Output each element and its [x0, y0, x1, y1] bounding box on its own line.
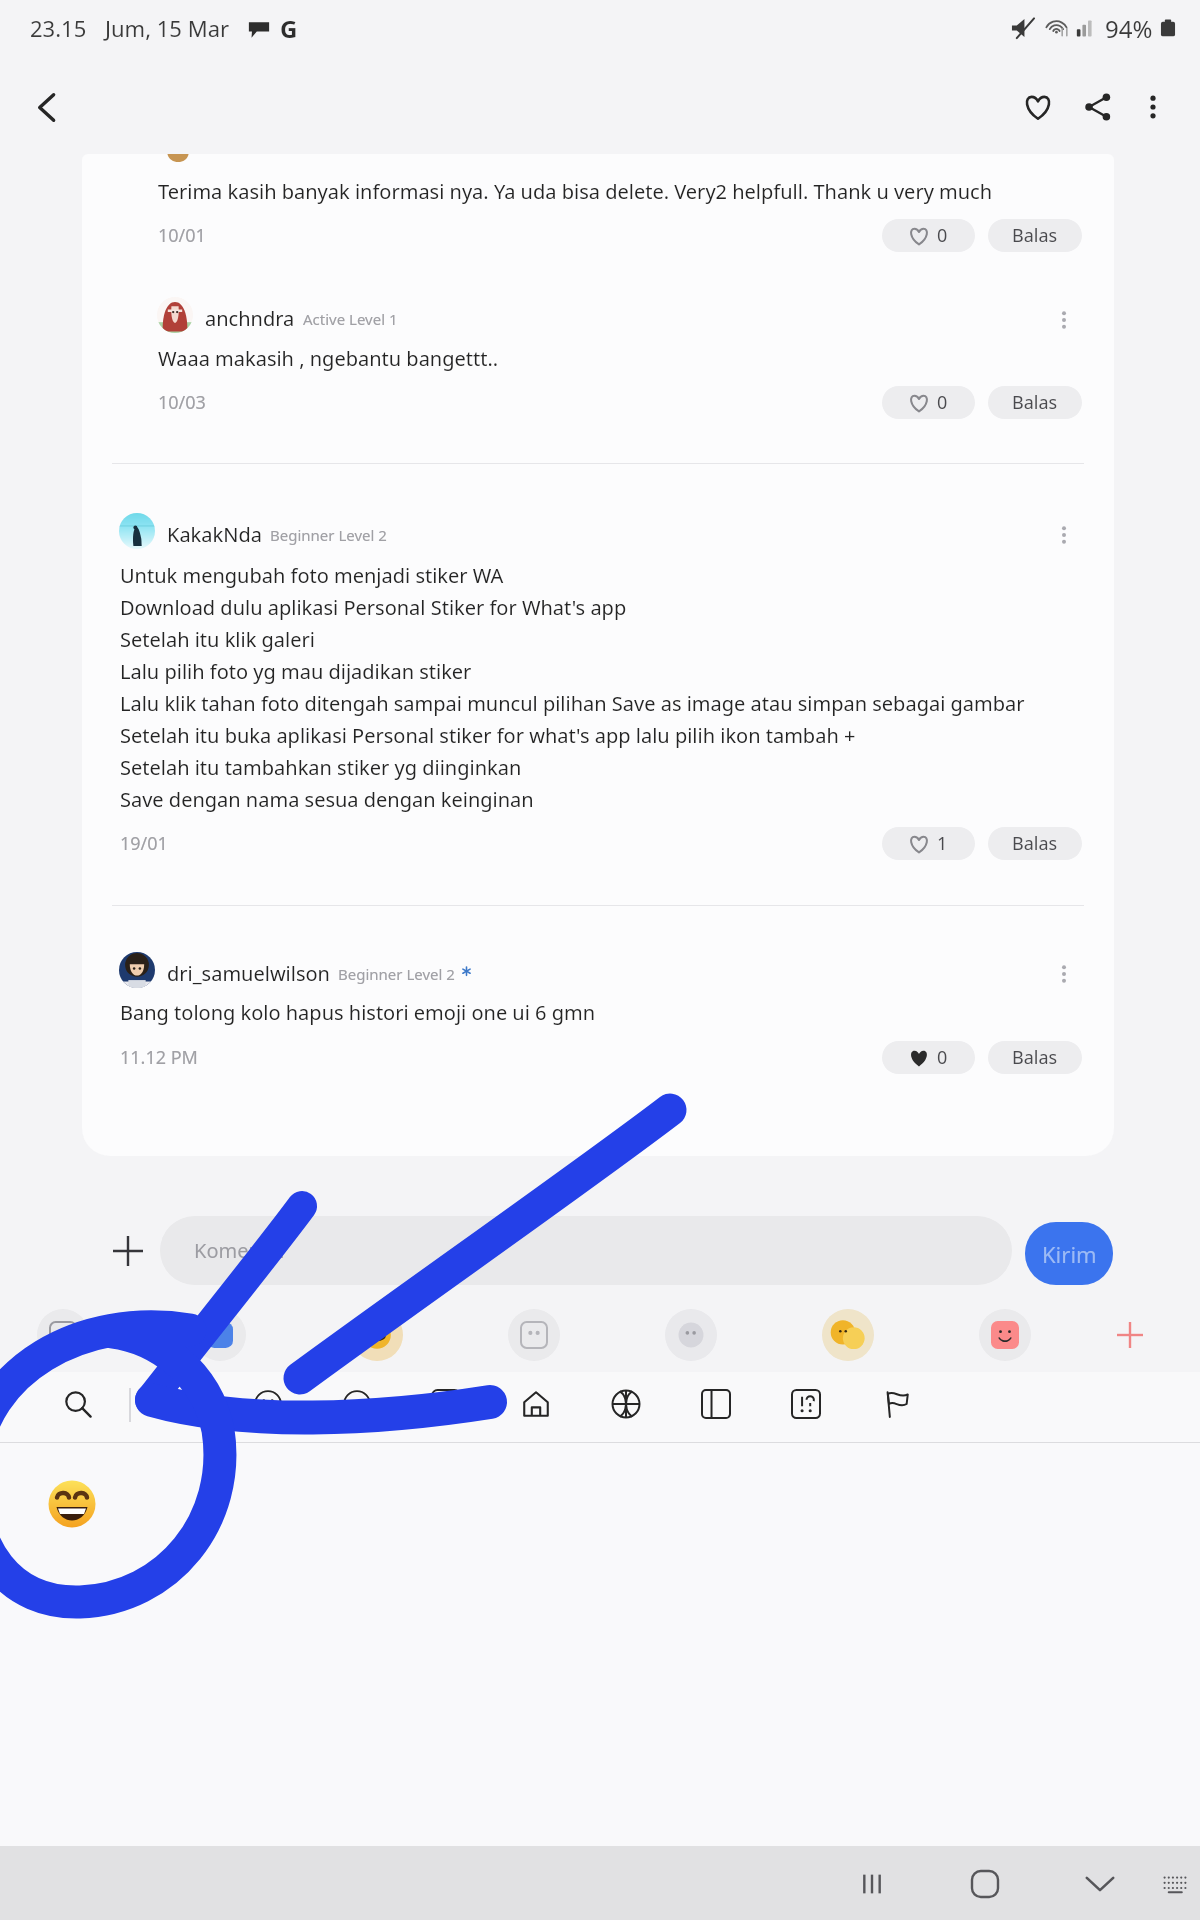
button[interactable]: Stickers	[332, 1379, 382, 1429]
button[interactable]: Balas	[988, 219, 1082, 252]
button[interactable]: Balas	[988, 827, 1082, 860]
button[interactable]: Shortcuts	[781, 1379, 831, 1429]
staticText: Balas	[1012, 223, 1058, 248]
staticText: Untuk mengubah foto menjadi stiker WA	[120, 562, 504, 589]
staticText: dri_samuelwilson	[167, 960, 330, 987]
staticText: 11.12 PM	[120, 1045, 198, 1070]
button[interactable]: Sticker	[822, 1309, 874, 1361]
button[interactable]: Sticker	[508, 1309, 560, 1361]
staticText: Lalu klik tahan foto ditengah sampai mun…	[120, 690, 1025, 717]
button[interactable]: Recents	[842, 1854, 902, 1914]
button[interactable]: Kirim	[1025, 1222, 1113, 1285]
staticText: Balas	[1012, 390, 1058, 415]
staticText: Save dengan nama sesua dengan keinginan	[120, 786, 534, 813]
button[interactable]: Flag	[871, 1379, 921, 1429]
button[interactable]: Comment options	[1044, 515, 1084, 555]
staticText: 0	[937, 390, 948, 415]
staticText: Beginner Level 2	[338, 964, 455, 984]
button[interactable]: Keyboard	[1145, 1854, 1200, 1914]
staticText: Balas	[1012, 831, 1058, 856]
staticText: 10/01	[158, 223, 206, 248]
staticText: anchndra	[205, 305, 295, 332]
staticText: 0	[937, 1045, 948, 1070]
staticText: Kirim	[1042, 1239, 1097, 1269]
staticText: Lalu pilih foto yg mau dijadikan stiker	[120, 658, 472, 685]
staticText: Komentar	[194, 1237, 288, 1264]
staticText: Setelah itu klik galeri	[120, 626, 315, 653]
button[interactable]: Komentar	[160, 1216, 1012, 1285]
staticText: 1	[937, 831, 948, 856]
staticText: Bang tolong kolo hapus histori emoji one…	[120, 999, 596, 1026]
staticText: 94%	[1105, 12, 1153, 45]
staticText: 0	[937, 223, 948, 248]
staticText: Waaa makasih , ngebantu bangettt..	[158, 345, 499, 372]
button[interactable]: Like this comment	[882, 219, 975, 252]
button[interactable]: Add attachment	[102, 1225, 154, 1277]
button[interactable]: Share	[1069, 78, 1127, 136]
button[interactable]: Comment options	[1044, 300, 1084, 340]
staticText: Terima kasih banyak informasi nya. Ya ud…	[158, 178, 993, 205]
button[interactable]: Sticker	[194, 1309, 246, 1361]
staticText: Beginner Level 2	[270, 525, 387, 545]
staticText: Active Level 1	[303, 309, 398, 329]
button[interactable]: Like	[1009, 78, 1067, 136]
button[interactable]: Like this comment	[882, 1041, 975, 1074]
button[interactable]: More options	[1124, 78, 1182, 136]
staticText: Jum, 15 Mar	[105, 13, 230, 43]
button[interactable]: Home	[511, 1379, 561, 1429]
button[interactable]: Comment options	[1044, 954, 1084, 994]
button[interactable]: Emoji	[243, 1379, 293, 1429]
staticText: KakakNda	[167, 521, 262, 548]
button[interactable]: Hide keyboard	[1070, 1854, 1130, 1914]
button[interactable]: GIFs	[421, 1379, 471, 1429]
button[interactable]: Like this comment	[882, 827, 975, 860]
staticText: Setelah itu tambahkan stiker yg diingink…	[120, 754, 522, 781]
button[interactable]: Sticker	[665, 1309, 717, 1361]
button[interactable]: Sticker	[37, 1309, 89, 1361]
button[interactable]: Search	[53, 1379, 103, 1429]
staticText: 10/03	[158, 390, 206, 415]
staticText: Setelah itu buka aplikasi Personal stike…	[120, 722, 856, 749]
button[interactable]: Like this comment	[882, 386, 975, 419]
button[interactable]: Balas	[988, 386, 1082, 419]
button[interactable]: Balas	[988, 1041, 1082, 1074]
staticText: 23.15	[30, 13, 87, 43]
staticText: Download dulu aplikasi Personal Stiker f…	[120, 594, 627, 621]
staticText: G	[280, 12, 298, 45]
staticText: Balas	[1012, 1045, 1058, 1070]
button[interactable]: Sticker	[351, 1309, 403, 1361]
button[interactable]: Back	[17, 78, 75, 136]
button[interactable]: Grinning emoji	[44, 1476, 100, 1532]
button[interactable]: Add sticker	[1104, 1309, 1156, 1361]
button[interactable]: Panel	[691, 1379, 741, 1429]
staticText: 19/01	[120, 831, 168, 856]
button[interactable]: Home	[955, 1854, 1015, 1914]
button[interactable]: Sticker	[979, 1309, 1031, 1361]
button[interactable]: Sports	[601, 1379, 651, 1429]
